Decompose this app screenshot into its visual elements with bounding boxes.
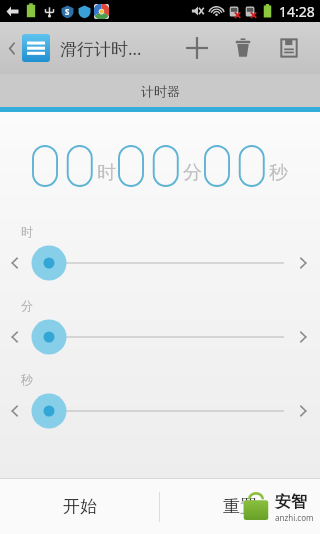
staticText: 秒: [21, 372, 33, 387]
staticText: 计时器: [141, 83, 180, 99]
button[interactable]: 开始: [0, 479, 159, 534]
button[interactable]: Add: [174, 22, 220, 74]
staticText: 时: [21, 224, 33, 239]
button[interactable]: Back to list: [0, 28, 54, 68]
button[interactable]: Increase 分: [286, 318, 320, 356]
staticText: 安智: [275, 492, 307, 512]
button[interactable]: [30, 244, 286, 282]
button[interactable]: Decrease 秒: [0, 392, 30, 430]
staticText: 分: [183, 161, 202, 185]
button[interactable]: Delete: [220, 22, 266, 74]
button[interactable]: [30, 318, 286, 356]
button[interactable]: Save: [266, 22, 312, 74]
staticText: anzhi.com: [275, 512, 314, 523]
button[interactable]: 计时器: [0, 74, 320, 107]
staticText: 滑行计时…: [60, 37, 142, 60]
button[interactable]: Increase 时: [286, 244, 320, 282]
button[interactable]: [30, 392, 286, 430]
button[interactable]: Decrease 时: [0, 244, 30, 282]
button[interactable]: 重置: [160, 479, 320, 534]
button[interactable]: Increase 秒: [286, 392, 320, 430]
staticText: 开始: [63, 496, 97, 517]
staticText: S: [65, 6, 70, 17]
staticText: 14:28: [279, 2, 315, 21]
staticText: 分: [21, 298, 33, 313]
staticText: 重置: [223, 496, 257, 517]
staticText: 秒: [269, 161, 288, 185]
button[interactable]: Decrease 分: [0, 318, 30, 356]
staticText: 时: [97, 161, 116, 185]
